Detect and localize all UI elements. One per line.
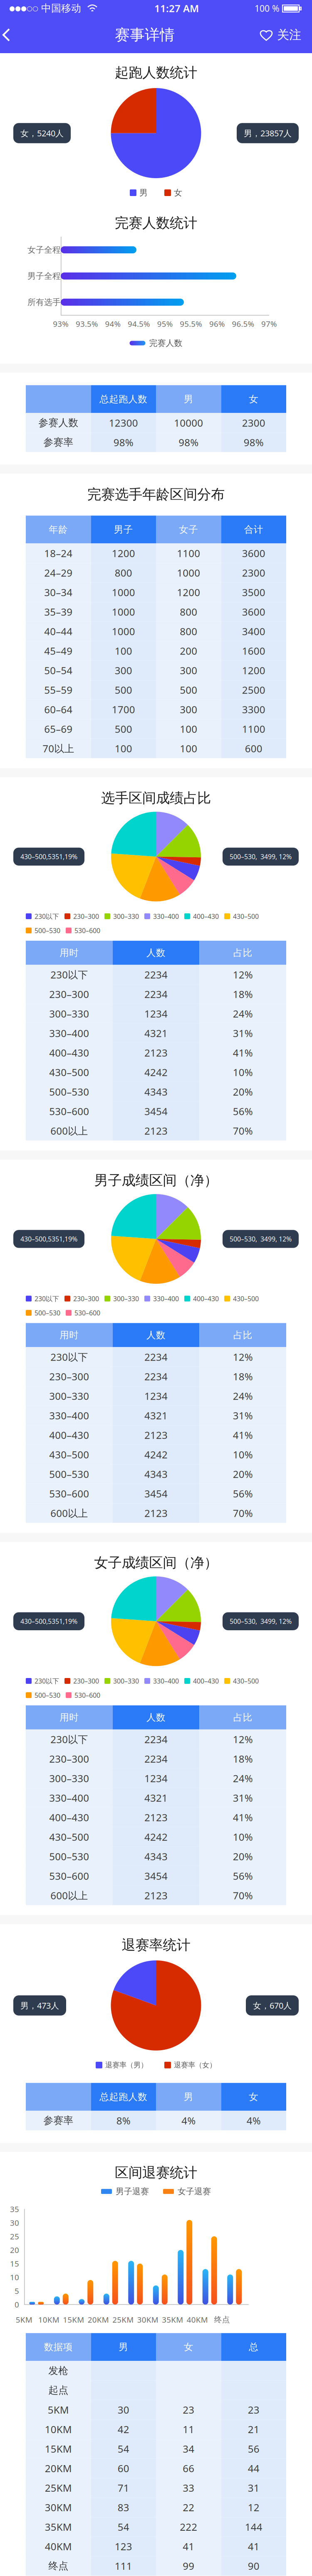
staticText: 530–600 xyxy=(74,1308,100,1317)
staticText: 230–300 xyxy=(73,1294,99,1303)
staticText: 合计 xyxy=(244,524,263,535)
staticText: 300–330 xyxy=(113,1676,139,1685)
staticText: 男子退赛 xyxy=(116,2186,149,2197)
staticText: 退赛率（女） xyxy=(174,2061,216,2069)
staticText: 300–330 xyxy=(49,1389,89,1403)
staticText: 2123 xyxy=(144,1506,168,1520)
staticText: 31 xyxy=(248,2481,260,2494)
staticText: 111 xyxy=(115,2559,132,2573)
staticText: 330–400 xyxy=(49,1409,89,1422)
staticText: 97% xyxy=(261,319,277,329)
staticText: 1200 xyxy=(177,586,200,599)
staticText: 40–44 xyxy=(44,625,72,638)
button[interactable]: 关注 xyxy=(260,17,312,53)
staticText: 230以下 xyxy=(35,912,59,921)
staticText: 1234 xyxy=(144,1007,168,1020)
staticText: 30KM xyxy=(137,2314,158,2325)
staticText: 完赛选手年龄区间分布 xyxy=(87,486,225,503)
staticText: 300–330 xyxy=(113,912,139,921)
staticText: 23 xyxy=(248,2403,260,2416)
staticText: 12% xyxy=(233,968,253,981)
staticText: 3300 xyxy=(242,703,265,716)
staticText: 4321 xyxy=(144,1026,168,1040)
staticText: 30–34 xyxy=(44,586,72,599)
staticText: 98% xyxy=(113,436,133,449)
staticText: 12 xyxy=(248,2501,260,2514)
staticText: 15KM xyxy=(45,2442,72,2455)
staticText: 430–500 xyxy=(233,912,259,921)
staticText: 31% xyxy=(233,1791,253,1804)
staticText: 100 xyxy=(115,644,132,657)
staticText: 20% xyxy=(233,1467,253,1481)
staticText: 女子全程 xyxy=(27,245,61,255)
staticText: 10KM xyxy=(45,2423,72,2436)
staticText: 5KM xyxy=(48,2403,69,2416)
staticText: 12% xyxy=(233,1350,253,1364)
staticText: 93% xyxy=(53,319,69,329)
staticText: 123 xyxy=(115,2540,132,2553)
staticText: 93.5% xyxy=(76,319,98,329)
staticText: 20 xyxy=(10,2245,19,2255)
staticText: 530–600 xyxy=(49,1105,89,1118)
staticText: 530–600 xyxy=(49,1487,89,1500)
staticText: 15 xyxy=(10,2258,19,2269)
staticText: 总 xyxy=(249,2341,258,2353)
staticText: 330–400 xyxy=(153,1676,179,1685)
staticText: 2234 xyxy=(144,1370,168,1383)
staticText: 56% xyxy=(233,1105,253,1118)
staticText: 4242 xyxy=(144,1448,168,1461)
staticText: 10% xyxy=(233,1830,253,1843)
staticText: 430–500,5351,19% xyxy=(20,1235,77,1243)
staticText: 100 % xyxy=(255,2,280,14)
staticText: 4321 xyxy=(144,1791,168,1804)
staticText: 300 xyxy=(115,664,132,677)
staticText: 2234 xyxy=(144,987,168,1001)
staticText: 100 xyxy=(180,742,197,755)
staticText: 400–430 xyxy=(193,1294,219,1303)
staticText: 4343 xyxy=(144,1085,168,1098)
staticText: 8% xyxy=(116,2114,131,2127)
staticText: 2123 xyxy=(144,1124,168,1137)
staticText: 1600 xyxy=(242,644,265,657)
staticText: 35KM xyxy=(45,2520,72,2534)
staticText: 1000 xyxy=(112,625,135,638)
staticText: 11 xyxy=(183,2423,194,2436)
staticText: 98% xyxy=(179,436,199,449)
staticText: 230–300 xyxy=(73,1676,99,1685)
staticText: 500–530 xyxy=(35,1308,60,1317)
staticText: 25 xyxy=(10,2231,19,2241)
staticText: 30 xyxy=(10,2218,19,2228)
staticText: 200 xyxy=(180,644,197,657)
staticText: 430–500 xyxy=(49,1066,89,1079)
staticText: 30 xyxy=(118,2403,129,2416)
staticText: 2300 xyxy=(242,416,265,429)
button[interactable]: 返回 xyxy=(0,17,30,53)
staticText: 300–330 xyxy=(113,1294,139,1303)
staticText: 终点 xyxy=(214,2315,230,2324)
staticText: 关注 xyxy=(277,27,301,42)
staticText: 500–530, 3499, 12% xyxy=(230,852,292,861)
staticText: 2123 xyxy=(144,1811,168,1824)
staticText: 41 xyxy=(183,2540,194,2553)
staticText: 参赛率 xyxy=(43,436,73,448)
staticText: 41% xyxy=(233,1428,253,1442)
staticText: 530–600 xyxy=(74,1691,100,1700)
staticText: 用时 xyxy=(60,1329,79,1341)
staticText: 98% xyxy=(244,436,264,449)
staticText: 完赛人数 xyxy=(149,338,182,348)
staticText: 96.5% xyxy=(232,319,254,329)
staticText: 50–54 xyxy=(44,664,72,677)
staticText: 人数 xyxy=(146,947,166,959)
staticText: 参赛率 xyxy=(43,2114,73,2127)
staticText: 18–24 xyxy=(44,547,72,560)
staticText: 31% xyxy=(233,1409,253,1422)
staticText: 600以上 xyxy=(50,1124,88,1137)
staticText: 20KM xyxy=(45,2462,72,2475)
staticText: 4321 xyxy=(144,1409,168,1422)
staticText: 18% xyxy=(233,1752,253,1765)
staticText: 4242 xyxy=(144,1066,168,1079)
staticText: 430–500 xyxy=(49,1830,89,1843)
staticText: 4% xyxy=(181,2114,196,2127)
staticText: 参赛人数 xyxy=(38,417,78,429)
staticText: 男子 xyxy=(114,524,133,535)
